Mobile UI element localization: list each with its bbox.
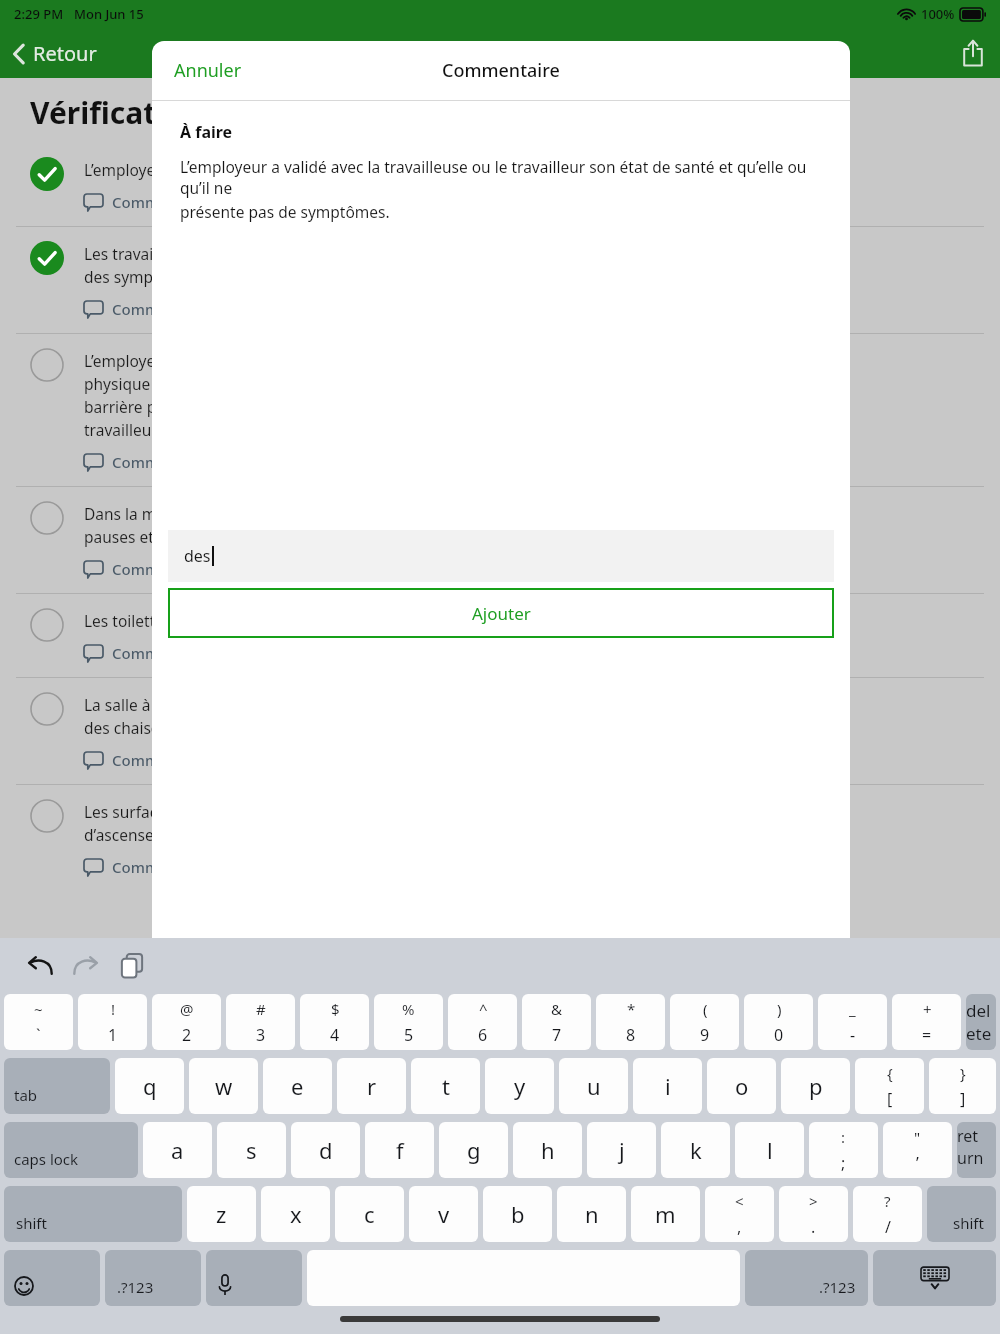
button[interactable]: a	[143, 1122, 212, 1178]
staticText: (	[703, 999, 708, 1019]
button[interactable]: Commentaire	[84, 192, 211, 212]
staticText: b	[511, 1199, 525, 1229]
button[interactable]: p	[781, 1058, 850, 1114]
button[interactable]: return	[957, 1122, 996, 1178]
button[interactable]: Commentaire	[84, 750, 211, 770]
button[interactable]: caps lock	[4, 1122, 138, 1178]
button[interactable]: des	[168, 530, 834, 582]
button[interactable]: o	[707, 1058, 776, 1114]
button[interactable]: .?123	[105, 1250, 201, 1306]
staticText: -	[850, 1024, 856, 1046]
button[interactable]: Les surfaces fréquemment touchées (poign…	[0, 784, 1000, 891]
staticText: Commentaire	[112, 299, 211, 319]
button[interactable]: Hide keyboard	[873, 1250, 996, 1306]
button[interactable]: z	[187, 1186, 256, 1242]
staticText: p	[809, 1071, 823, 1101]
button[interactable]: Redo	[64, 944, 108, 988]
button[interactable]: >	[779, 1186, 848, 1242]
button[interactable]: m	[631, 1186, 700, 1242]
button[interactable]: @	[152, 994, 221, 1050]
button[interactable]: $	[300, 994, 369, 1050]
button[interactable]: %	[374, 994, 443, 1050]
button[interactable]: .?123	[745, 1250, 868, 1306]
staticText: tab	[14, 1085, 38, 1105]
button[interactable]: _	[818, 994, 887, 1050]
staticText: Les surfaces fréquemment touchées (poign…	[84, 801, 571, 822]
button[interactable]: Dictate	[206, 1250, 302, 1306]
button[interactable]: l	[735, 1122, 804, 1178]
button[interactable]: g	[439, 1122, 508, 1178]
button[interactable]: e	[263, 1058, 332, 1114]
button[interactable]: q	[115, 1058, 184, 1114]
button[interactable]: Dans la mesure du possible, l’aménagemen…	[0, 486, 1000, 593]
button[interactable]: ?	[853, 1186, 922, 1242]
staticText: shift	[953, 1213, 984, 1233]
button[interactable]: shift	[927, 1186, 996, 1242]
staticText: Commentaire	[112, 559, 211, 579]
button[interactable]: ~	[4, 994, 73, 1050]
button[interactable]: {	[855, 1058, 924, 1114]
button[interactable]: w	[189, 1058, 258, 1114]
button[interactable]: <	[705, 1186, 774, 1242]
button[interactable]: h	[513, 1122, 582, 1178]
button[interactable]: d	[291, 1122, 360, 1178]
button[interactable]: Ajouter	[168, 588, 834, 638]
button[interactable]: s	[217, 1122, 286, 1178]
button[interactable]: )	[744, 994, 813, 1050]
button[interactable]: Annuler	[152, 50, 256, 91]
button[interactable]: ^	[448, 994, 517, 1050]
staticText: Retour	[33, 40, 97, 67]
button[interactable]: :	[809, 1122, 878, 1178]
button[interactable]: u	[559, 1058, 628, 1114]
button[interactable]: j	[587, 1122, 656, 1178]
staticText: .	[811, 1216, 816, 1238]
button[interactable]: Les travailleuses et travailleurs ont ét…	[0, 226, 1000, 333]
button[interactable]: }	[929, 1058, 996, 1114]
button[interactable]: Commentaire	[84, 643, 211, 663]
button[interactable]: y	[485, 1058, 554, 1114]
button[interactable]: Les toilettes sont nettoyées et désinfec…	[0, 593, 1000, 677]
staticText: ~	[34, 999, 43, 1019]
button[interactable]: La salle à manger, la salle de repos, le…	[0, 677, 1000, 784]
staticText: Ajouter	[472, 602, 531, 625]
button[interactable]: #	[226, 994, 295, 1050]
staticText: *	[627, 999, 636, 1019]
staticText: barrière physique ou des équipements de …	[84, 396, 564, 417]
button[interactable]: Commentaire	[84, 299, 211, 319]
button[interactable]: Undo	[18, 944, 62, 988]
button[interactable]: L’employeur a mis en place des mesures p…	[0, 333, 1000, 486]
button[interactable]: delete	[966, 994, 996, 1050]
button[interactable]: Share	[946, 28, 1000, 78]
button[interactable]: *	[596, 994, 665, 1050]
button[interactable]: shift	[4, 1186, 182, 1242]
button[interactable]: x	[261, 1186, 330, 1242]
button[interactable]: i	[633, 1058, 702, 1114]
button[interactable]: Paste	[110, 944, 154, 988]
staticText: :	[841, 1127, 846, 1147]
button[interactable]: Commentaire	[84, 452, 211, 472]
button[interactable]: r	[337, 1058, 406, 1114]
button[interactable]: Commentaire	[84, 559, 211, 579]
button[interactable]: c	[335, 1186, 404, 1242]
staticText: 2	[182, 1024, 192, 1046]
button[interactable]: v	[409, 1186, 478, 1242]
button[interactable]: Retour	[0, 34, 109, 73]
button[interactable]: L’employeur a validé avec la travailleus…	[0, 155, 1000, 226]
button[interactable]: Commentaire	[84, 857, 211, 877]
staticText: des	[184, 545, 211, 567]
button[interactable]: tab	[4, 1058, 110, 1114]
button[interactable]: !	[78, 994, 147, 1050]
button[interactable]: &	[522, 994, 591, 1050]
button[interactable]: k	[661, 1122, 730, 1178]
button[interactable]: (	[670, 994, 739, 1050]
button[interactable]: t	[411, 1058, 480, 1114]
button[interactable]: Emoji	[4, 1250, 100, 1306]
button[interactable]: "	[883, 1122, 952, 1178]
button[interactable]: n	[557, 1186, 626, 1242]
button[interactable]: b	[483, 1186, 552, 1242]
staticText: c	[364, 1199, 375, 1229]
button[interactable]: f	[365, 1122, 434, 1178]
button[interactable]: +	[892, 994, 961, 1050]
staticText: 9	[700, 1024, 710, 1046]
